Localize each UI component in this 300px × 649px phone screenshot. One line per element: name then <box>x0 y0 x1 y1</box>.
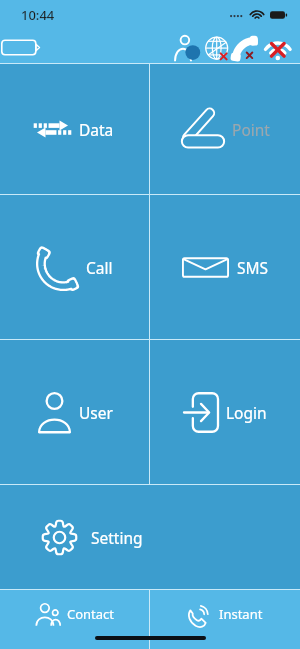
staticText: Contact <box>67 605 115 623</box>
staticText: 10:44 <box>21 6 55 24</box>
button[interactable]: Account <box>172 26 200 63</box>
staticText: Data <box>79 119 114 140</box>
staticText: Point <box>232 119 270 140</box>
button[interactable]: Call disabled <box>226 26 254 63</box>
staticText: Login <box>226 402 267 423</box>
staticText: SMS <box>237 257 269 278</box>
button[interactable]: Contact <box>0 590 149 649</box>
button[interactable]: Point <box>150 64 300 194</box>
staticText: Call <box>86 257 113 278</box>
button[interactable]: Setting <box>0 485 300 589</box>
button[interactable]: Login <box>150 340 300 484</box>
button[interactable]: SMS <box>150 195 300 339</box>
staticText: User <box>79 402 113 423</box>
button[interactable]: User <box>0 340 149 484</box>
other: Battery <box>1 39 40 56</box>
staticText: Setting <box>91 527 143 548</box>
button[interactable]: Call <box>0 195 149 339</box>
button[interactable]: Instant <box>150 590 300 649</box>
staticText: Instant <box>219 605 263 623</box>
button[interactable]: No wifi <box>254 26 292 63</box>
button[interactable]: No network <box>200 26 226 63</box>
button[interactable]: Data <box>0 64 149 194</box>
